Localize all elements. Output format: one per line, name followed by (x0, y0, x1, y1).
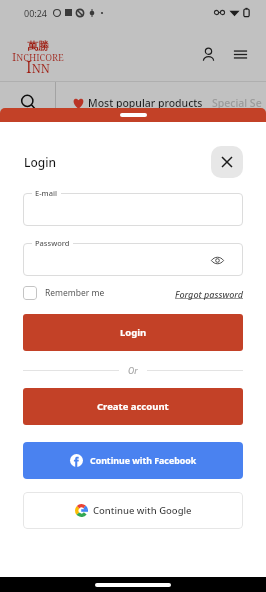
button[interactable] (23, 193, 243, 226)
button[interactable]: Continue with Facebook (23, 442, 243, 479)
staticText: Remember me (45, 287, 105, 299)
staticText: Password (35, 238, 70, 248)
staticText: Login (120, 326, 147, 339)
staticText: Create account (97, 400, 169, 413)
button[interactable]: Menu (226, 40, 254, 68)
button[interactable]: Create account (23, 388, 243, 425)
staticText: 萬勝 (27, 39, 49, 53)
button[interactable]: Continue with Google (23, 492, 243, 529)
staticText: Continue with Google (93, 504, 192, 517)
staticText: INN (26, 56, 51, 77)
staticText: INCHICORE (12, 49, 64, 65)
staticText: Special Se (212, 96, 262, 110)
staticText: Most popular products (88, 96, 203, 110)
button[interactable]: Most popular products (72, 82, 203, 108)
staticText: Continue with Facebook (90, 455, 197, 467)
staticText: 00:24 (24, 7, 48, 19)
button[interactable]: Show password (208, 251, 226, 269)
button[interactable]: Login (23, 314, 243, 351)
staticText: Or (128, 365, 138, 377)
button[interactable]: Account (194, 40, 222, 68)
button[interactable]: Search (0, 82, 55, 108)
button[interactable]: Close (211, 146, 243, 178)
button[interactable]: Forgot password (175, 285, 243, 300)
button[interactable]: Remember me (23, 285, 105, 300)
staticText: Login (24, 154, 56, 170)
staticText: E-mail (35, 188, 58, 198)
button[interactable] (23, 243, 243, 276)
